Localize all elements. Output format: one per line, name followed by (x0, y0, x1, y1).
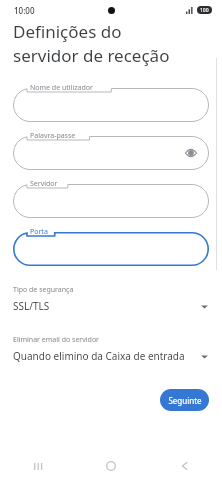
button[interactable]: Porta (13, 232, 209, 266)
button[interactable]: Início (74, 451, 148, 481)
button[interactable]: Seguinte (160, 389, 209, 411)
staticText: Porta (30, 227, 48, 237)
button[interactable]: Tipo de segurança (13, 285, 209, 313)
staticText: Seguinte (168, 395, 202, 406)
button[interactable]: Servidor (13, 184, 209, 218)
button[interactable]: Mostrar palavra-passe (183, 145, 199, 161)
button[interactable]: Nome de utilizador (13, 88, 209, 122)
staticText: Nome de utilizador (30, 83, 93, 93)
button[interactable]: Recentes (0, 451, 74, 481)
button[interactable]: Palavra-passe (13, 136, 209, 170)
staticText: Definições do servidor de receção (13, 20, 170, 67)
staticText: SSL/TLS (13, 299, 200, 313)
button[interactable]: Voltar (148, 451, 222, 481)
staticText: Eliminar email do servidor (13, 335, 100, 345)
staticText: Quando elimino da Caixa de entrada (13, 349, 200, 363)
staticText: Tipo de segurança (13, 285, 74, 295)
button[interactable]: Eliminar email do servidor (13, 335, 209, 363)
staticText: 10:00 (14, 5, 35, 16)
staticText: Servidor (30, 179, 58, 189)
staticText: 100 (200, 7, 209, 14)
staticText: Palavra-passe (30, 131, 76, 141)
